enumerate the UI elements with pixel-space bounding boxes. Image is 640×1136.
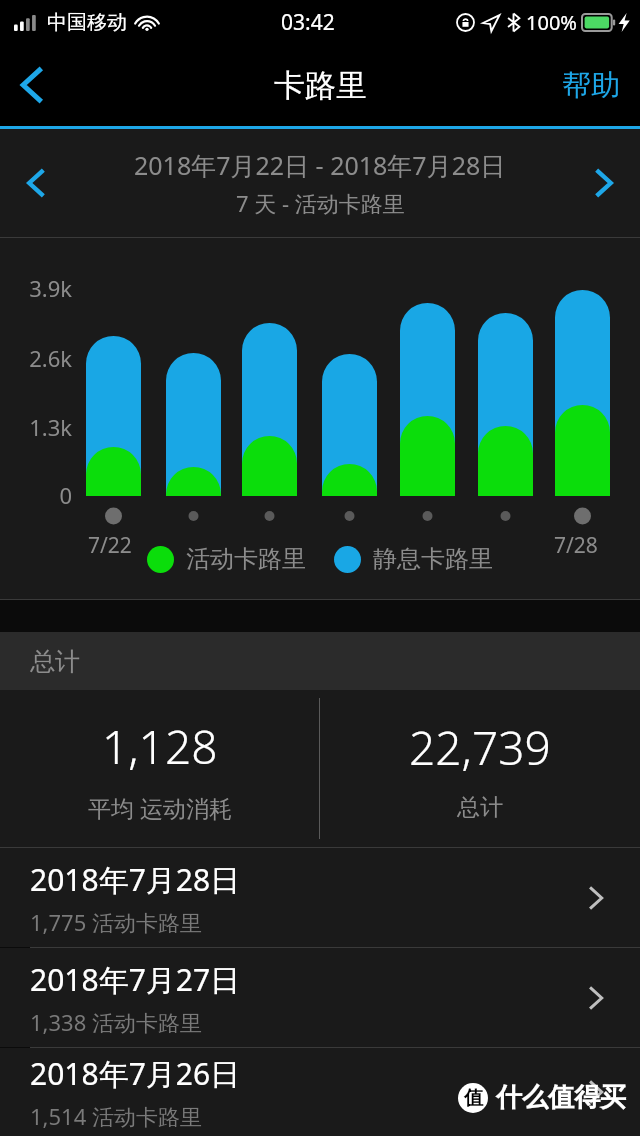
staticText: 2018年7月27日 bbox=[30, 959, 241, 1000]
staticText: 卡路里 bbox=[274, 66, 367, 105]
staticText: 3.9k bbox=[29, 273, 72, 303]
staticText: 什么值得买 bbox=[496, 1081, 626, 1114]
button[interactable]: 2018年7月28日 bbox=[0, 848, 640, 947]
button[interactable]: Back bbox=[0, 50, 64, 120]
staticText: 7 天 - 活动卡路里 bbox=[236, 188, 405, 218]
staticText: 1,514 活动卡路里 bbox=[30, 1101, 202, 1131]
staticText: 7/22 bbox=[88, 531, 132, 560]
button[interactable]: 1,128 bbox=[0, 690, 319, 847]
button[interactable]: 2018年7月26日 bbox=[0, 1048, 640, 1136]
staticText: 2018年7月28日 bbox=[30, 859, 241, 900]
staticText: 1,338 活动卡路里 bbox=[30, 1007, 202, 1037]
staticText: 1,128 bbox=[102, 715, 218, 778]
staticText: 静息卡路里 bbox=[373, 544, 493, 574]
staticText: 平均 运动消耗 bbox=[88, 792, 232, 823]
button[interactable]: Next week bbox=[568, 144, 640, 222]
staticText: 中国移动 bbox=[47, 10, 127, 35]
button[interactable]: 2018年7月27日 bbox=[0, 948, 640, 1047]
staticText: 总计 bbox=[30, 646, 80, 677]
staticText: 值 bbox=[464, 1086, 483, 1110]
staticText: 2.6k bbox=[29, 343, 72, 373]
staticText: 帮助 bbox=[562, 67, 620, 104]
staticText: 7/28 bbox=[554, 531, 598, 560]
staticText: 22,739 bbox=[409, 716, 551, 779]
button[interactable]: Previous week bbox=[0, 144, 72, 222]
staticText: 总计 bbox=[457, 793, 503, 822]
staticText: 0 bbox=[59, 480, 72, 510]
button[interactable]: 22,739 bbox=[320, 690, 640, 847]
staticText: 1,775 活动卡路里 bbox=[30, 907, 202, 937]
staticText: 活动卡路里 bbox=[186, 544, 306, 574]
button[interactable]: 帮助 bbox=[558, 59, 624, 112]
staticText: 100% bbox=[526, 9, 577, 36]
staticText: 1.3k bbox=[29, 412, 72, 442]
staticText: 2018年7月26日 bbox=[30, 1053, 241, 1094]
staticText: 2018年7月22日 - 2018年7月28日 bbox=[134, 148, 506, 182]
staticText: 03:42 bbox=[281, 8, 335, 37]
